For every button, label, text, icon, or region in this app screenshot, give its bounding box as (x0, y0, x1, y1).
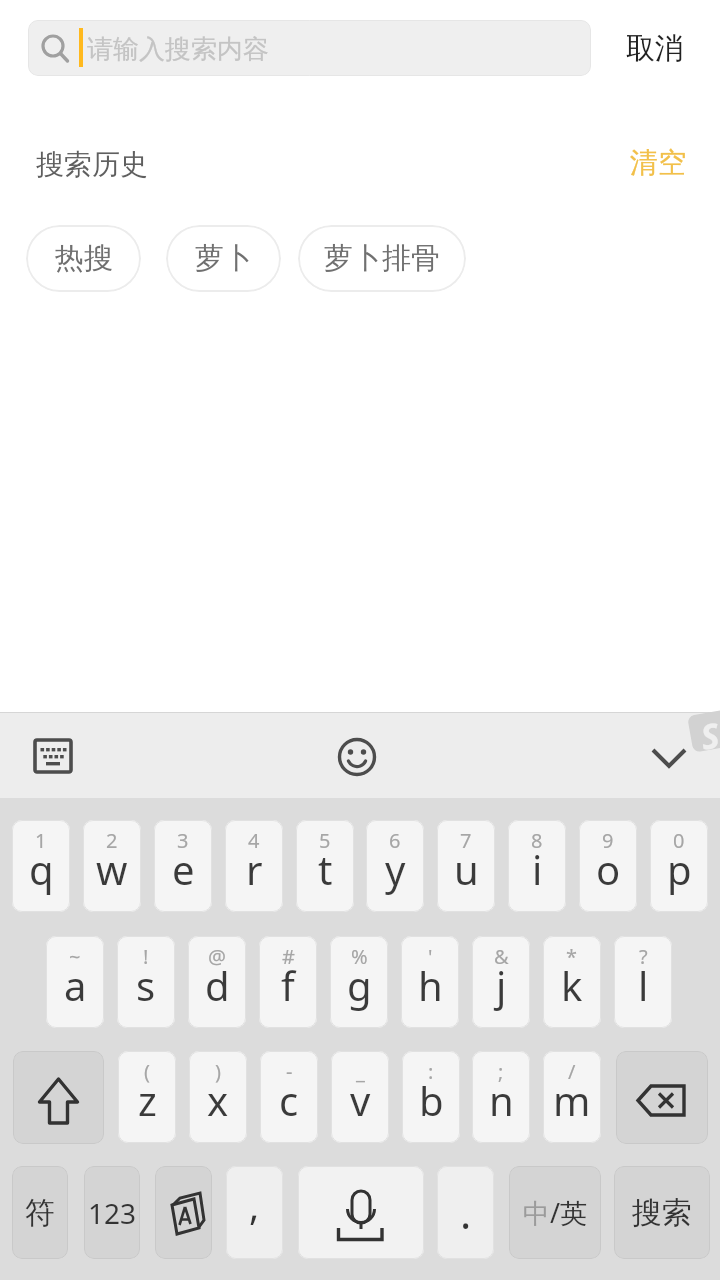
staticText: ? (639, 943, 648, 970)
button[interactable]: ? (614, 936, 672, 1028)
staticText: c (279, 1073, 299, 1127)
staticText: 中/英 (523, 1194, 588, 1231)
staticText: 4 (248, 827, 260, 854)
button[interactable]: # (259, 936, 317, 1028)
staticText: ~ (69, 943, 81, 970)
staticText: & (494, 943, 509, 970)
staticText: 2 (106, 827, 118, 854)
staticText: ' (428, 943, 433, 970)
staticText: S (697, 711, 720, 751)
staticText: 请输入搜索内容 (87, 33, 269, 66)
button[interactable] (155, 1166, 212, 1259)
staticText: 1 (35, 827, 47, 854)
button[interactable]: ) (189, 1051, 247, 1143)
button[interactable] (329, 729, 385, 785)
button[interactable]: 4 (225, 820, 283, 912)
staticText: , (249, 1179, 260, 1231)
staticText: 搜索 (632, 1194, 692, 1232)
staticText: u (454, 842, 479, 896)
button[interactable]: 中/英 (509, 1166, 601, 1259)
staticText: 取消 (626, 30, 684, 67)
staticText: f (281, 958, 295, 1012)
staticText: 0 (673, 827, 685, 854)
staticText: 123 (88, 1194, 137, 1232)
staticText: v (350, 1073, 371, 1127)
button[interactable]: 热搜 (26, 225, 141, 292)
staticText: _ (356, 1058, 365, 1085)
staticText: 萝卜 (195, 240, 253, 277)
button[interactable]: & (472, 936, 530, 1028)
staticText: ; (498, 1058, 504, 1085)
staticText: q (29, 842, 54, 896)
staticText: ( (144, 1058, 150, 1085)
staticText: y (385, 842, 406, 896)
button[interactable]: ; (472, 1051, 530, 1143)
staticText: n (489, 1073, 514, 1127)
button[interactable]: : (402, 1051, 460, 1143)
staticText: k (561, 958, 583, 1012)
button[interactable] (13, 1051, 104, 1144)
button[interactable]: @ (188, 936, 246, 1028)
staticText: - (286, 1058, 293, 1085)
button[interactable]: % (330, 936, 388, 1028)
staticText: 3 (177, 827, 189, 854)
button[interactable]: ~ (46, 936, 104, 1028)
button[interactable]: 5 (296, 820, 354, 912)
button[interactable]: / (543, 1051, 601, 1143)
button[interactable]: , (226, 1166, 283, 1259)
button[interactable]: 搜索 (614, 1166, 710, 1259)
staticText: 5 (319, 827, 331, 854)
staticText: # (282, 943, 295, 970)
staticText: p (667, 842, 692, 896)
button[interactable]: ( (118, 1051, 176, 1143)
staticText: 符 (25, 1194, 55, 1232)
staticText: d (205, 958, 230, 1012)
button[interactable]: 0 (650, 820, 708, 912)
button[interactable]: . (437, 1166, 494, 1259)
staticText: a (64, 958, 87, 1012)
button[interactable]: 6 (366, 820, 424, 912)
button[interactable]: 萝卜排骨 (298, 225, 466, 292)
button[interactable] (616, 1051, 708, 1144)
staticText: : (428, 1058, 434, 1085)
staticText: 6 (389, 827, 401, 854)
staticText: . (460, 1184, 472, 1241)
staticText: 9 (602, 827, 614, 854)
staticText: b (419, 1073, 444, 1127)
button[interactable] (24, 730, 82, 780)
button[interactable]: 取消 (610, 22, 700, 74)
button[interactable]: - (260, 1051, 318, 1143)
button[interactable]: 2 (83, 820, 141, 912)
button[interactable] (641, 738, 697, 778)
button[interactable]: _ (331, 1051, 389, 1143)
button[interactable]: 萝卜 (166, 225, 281, 292)
staticText: 8 (531, 827, 543, 854)
button[interactable]: 1 (12, 820, 70, 912)
staticText: 热搜 (55, 240, 113, 277)
button[interactable]: 清空 (615, 140, 700, 184)
button[interactable]: ! (117, 936, 175, 1028)
staticText: 7 (460, 827, 472, 854)
button[interactable]: 请输入搜索内容 (28, 20, 591, 76)
staticText: % (351, 943, 368, 970)
button[interactable]: 7 (437, 820, 495, 912)
staticText: 萝卜排骨 (324, 240, 440, 277)
button[interactable]: ' (401, 936, 459, 1028)
button[interactable]: 3 (154, 820, 212, 912)
staticText: g (347, 958, 372, 1012)
staticText: s (136, 958, 156, 1012)
staticText: l (638, 958, 649, 1012)
staticText: m (553, 1073, 591, 1127)
staticText: ! (143, 943, 149, 970)
staticText: i (532, 842, 543, 896)
button[interactable]: 9 (579, 820, 637, 912)
staticText: z (138, 1073, 157, 1127)
button[interactable]: * (543, 936, 601, 1028)
staticText: ) (215, 1058, 221, 1085)
button[interactable]: 符 (12, 1166, 68, 1259)
button[interactable]: 8 (508, 820, 566, 912)
button[interactable]: 123 (84, 1166, 140, 1259)
staticText: t (318, 842, 333, 896)
staticText: o (596, 842, 621, 896)
button[interactable] (298, 1166, 424, 1259)
